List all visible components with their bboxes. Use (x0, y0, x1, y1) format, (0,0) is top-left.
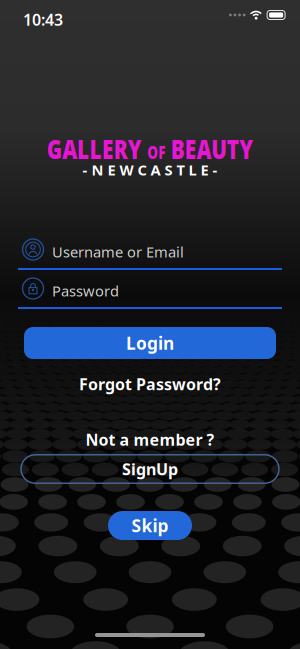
staticText: SignUp (122, 458, 178, 480)
staticText: Username or Email (52, 242, 184, 261)
button[interactable]: Forgot Password? (79, 373, 221, 395)
staticText: 10:43 (23, 9, 63, 30)
staticText: - N E W C A S T L E - (82, 160, 217, 179)
staticText: Login (126, 331, 174, 354)
staticText: Not a member ? (85, 429, 214, 450)
button[interactable]: Username or Email (18, 236, 282, 270)
button[interactable]: SignUp (20, 454, 280, 484)
staticText: Password (52, 281, 119, 300)
staticText: Skip (131, 514, 168, 537)
button[interactable]: Skip (108, 511, 192, 540)
button[interactable]: Login (24, 327, 276, 359)
staticText: GALLERY OF BEAUTY (17, 131, 282, 166)
button[interactable]: Password (18, 275, 282, 309)
staticText: Forgot Password? (79, 373, 221, 395)
